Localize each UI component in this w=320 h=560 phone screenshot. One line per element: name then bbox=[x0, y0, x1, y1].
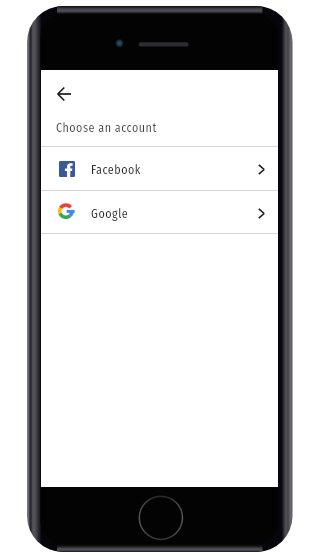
staticText: Choose an account bbox=[56, 121, 157, 135]
staticText: Facebook bbox=[91, 163, 141, 177]
button[interactable]: Facebook bbox=[41, 146, 278, 189]
button[interactable]: Google bbox=[41, 190, 278, 233]
staticText: Google bbox=[91, 207, 129, 221]
button[interactable]: Back bbox=[46, 76, 82, 112]
